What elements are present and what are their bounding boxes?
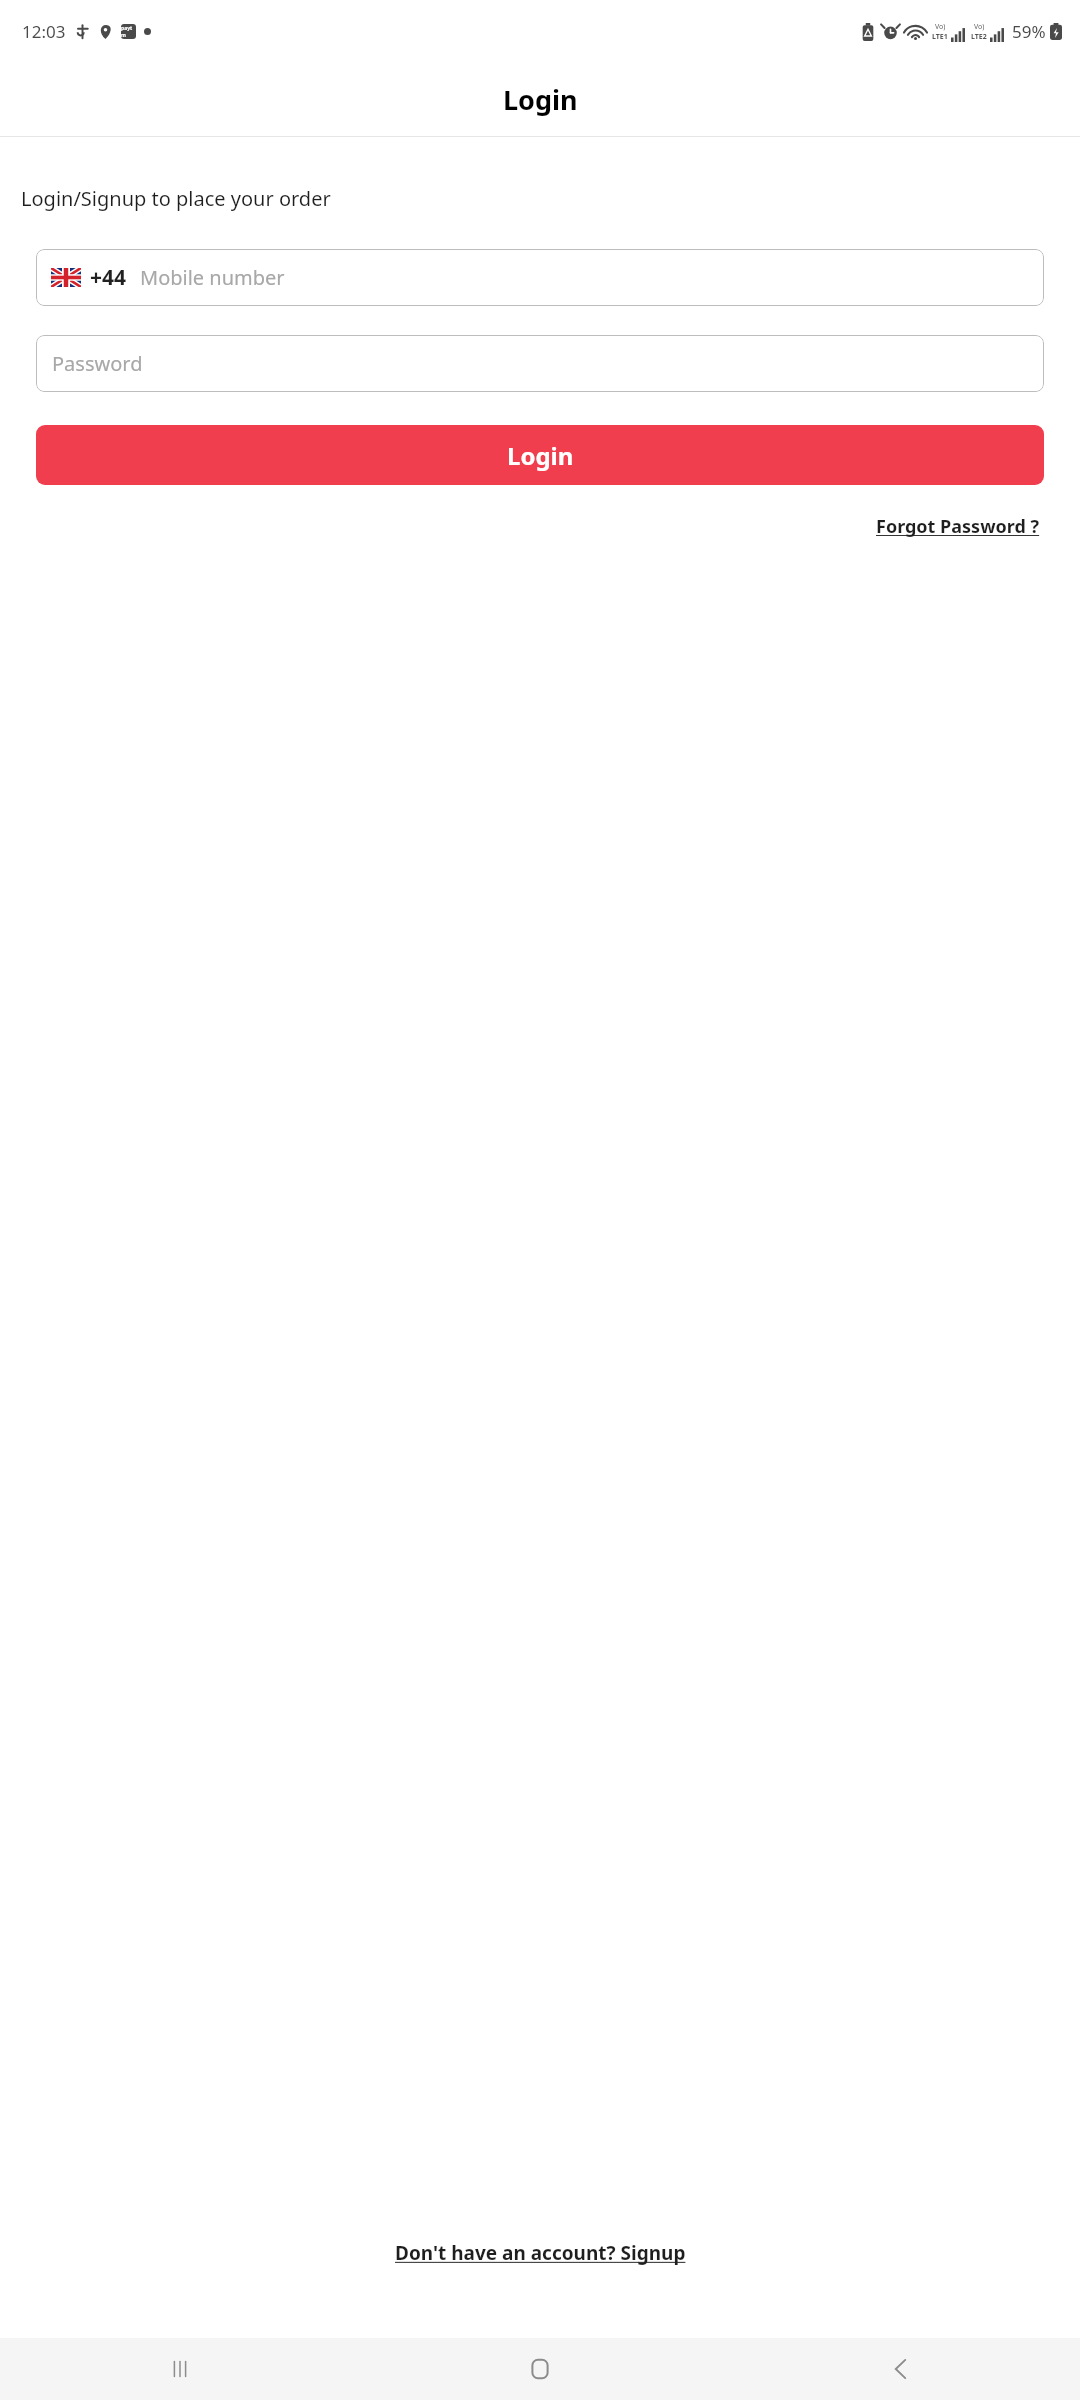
staticText: Vo) xyxy=(935,22,946,32)
staticText: Forgot Password ? xyxy=(876,514,1040,539)
staticText: Login xyxy=(503,81,578,118)
button[interactable]: Don't have an account? Signup xyxy=(0,2230,1080,2276)
button[interactable]: Forgot Password ? xyxy=(872,508,1044,545)
button[interactable]: Home xyxy=(360,2338,720,2400)
staticText: Mobile number xyxy=(140,264,285,291)
button[interactable]: Login xyxy=(36,425,1044,485)
staticText: Login/Signup to place your order xyxy=(21,185,331,212)
staticText: Login xyxy=(507,439,574,472)
button[interactable]: +44 xyxy=(36,249,1044,306)
button[interactable]: Password xyxy=(36,335,1044,392)
staticText: paytm xyxy=(121,25,136,39)
staticText: 59% xyxy=(1012,20,1046,43)
staticText: Vo) xyxy=(974,22,985,32)
staticText: LTE1 xyxy=(932,32,948,42)
staticText: +44 xyxy=(90,263,127,292)
staticText: Password xyxy=(52,350,143,377)
button[interactable]: Back xyxy=(720,2338,1080,2400)
staticText: 12:03 xyxy=(22,20,66,43)
staticText: Don't have an account? Signup xyxy=(395,2240,686,2266)
button[interactable]: Recent apps xyxy=(0,2338,360,2400)
staticText: LTE2 xyxy=(971,32,987,42)
